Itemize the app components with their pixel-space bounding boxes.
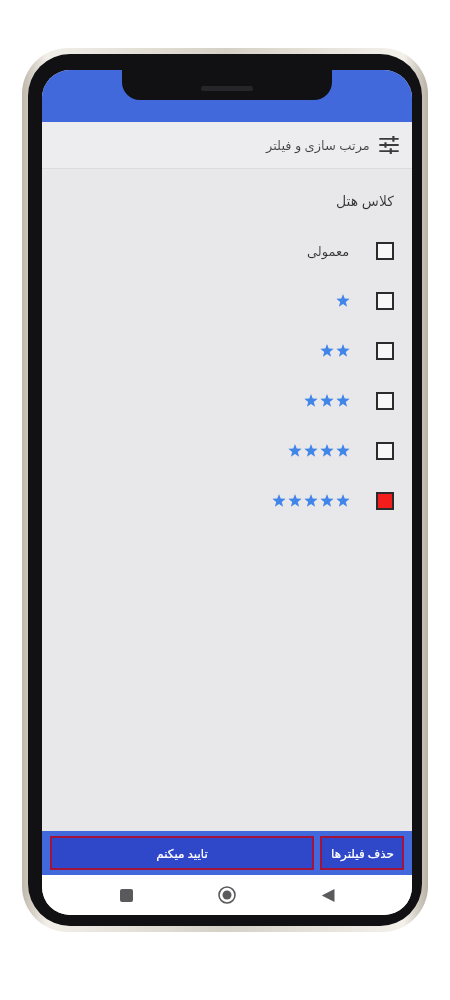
button[interactable] <box>42 326 412 376</box>
staticText: حذف فیلترها <box>331 845 394 861</box>
other: Sort and filter <box>378 134 400 156</box>
staticText: تایید میکنم <box>156 845 208 861</box>
button[interactable]: مرتب سازی و فیلتر <box>42 122 412 168</box>
button[interactable] <box>42 426 412 476</box>
button[interactable] <box>42 276 412 326</box>
button[interactable]: معمولی <box>42 226 412 276</box>
button[interactable] <box>42 476 412 526</box>
button[interactable]: حذف فیلترها <box>320 836 404 870</box>
staticText: معمولی <box>307 244 350 259</box>
button[interactable]: تایید میکنم <box>50 836 314 870</box>
staticText: کلاس هتل <box>336 191 394 210</box>
button[interactable]: Recent apps <box>109 878 143 912</box>
button[interactable]: Back <box>311 878 345 912</box>
staticText: مرتب سازی و فیلتر <box>266 136 370 154</box>
button[interactable]: Home <box>210 878 244 912</box>
button[interactable] <box>42 376 412 426</box>
